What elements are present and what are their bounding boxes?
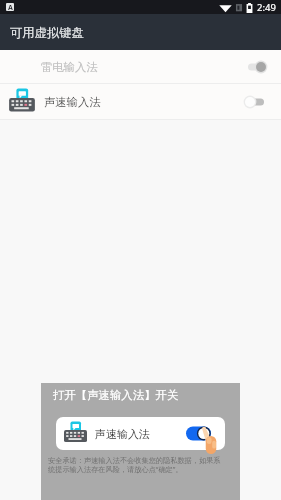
staticText: 2:49 — [257, 1, 276, 14]
staticText: 声速输入法 — [95, 427, 150, 441]
staticText: 声速输入法 — [44, 95, 101, 109]
staticText: 雷电输入法 — [41, 60, 98, 74]
staticText: A — [8, 3, 13, 11]
button[interactable]: Toggle input method — [245, 93, 267, 111]
staticText: 安全承诺：声速输入法不会收集您的隐私数据，如果系统提示输入法存在风险，请放心点“… — [48, 456, 222, 474]
button[interactable]: 声速输入法 — [56, 417, 225, 450]
staticText: 打开【声速输入法】开关 — [53, 388, 179, 402]
button[interactable]: 声速输入法 — [0, 84, 281, 119]
button[interactable]: Enable input method — [186, 426, 211, 441]
button[interactable]: Toggle input method — [245, 58, 267, 76]
staticText: 可用虚拟键盘 — [10, 25, 84, 40]
button[interactable]: 雷电输入法 — [0, 50, 281, 83]
